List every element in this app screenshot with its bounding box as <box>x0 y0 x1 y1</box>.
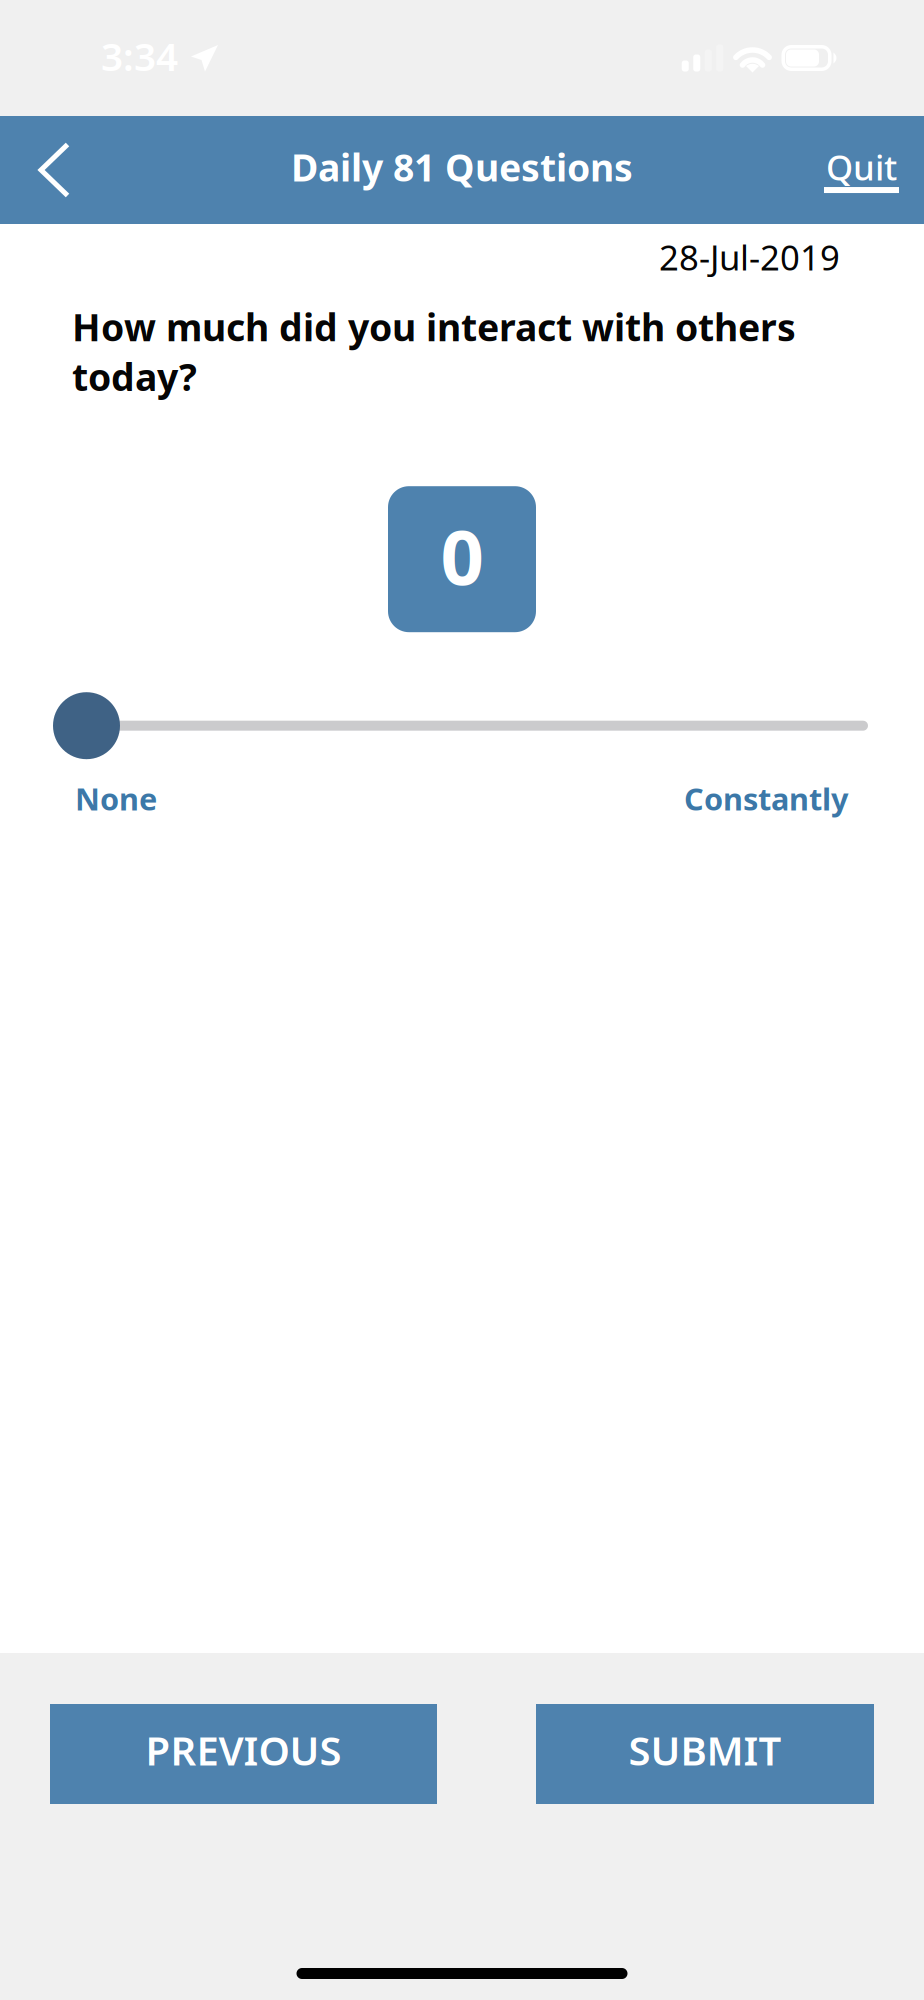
staticText: Quit <box>826 144 897 190</box>
staticText: Daily 81 Questions <box>291 142 633 192</box>
staticText: 28-Jul-2019 <box>659 234 840 280</box>
staticText: Constantly <box>684 778 849 819</box>
staticText: PREVIOUS <box>145 1723 341 1776</box>
staticText: SUBMIT <box>628 1723 781 1776</box>
button[interactable]: SUBMIT <box>536 1704 874 1804</box>
staticText: 3:34 <box>101 30 178 82</box>
staticText: None <box>75 778 157 819</box>
button[interactable]: Back <box>0 116 91 224</box>
staticText: How much did you interact with others to… <box>72 302 796 401</box>
button[interactable]: PREVIOUS <box>50 1704 437 1804</box>
button[interactable]: Quit <box>810 116 924 224</box>
staticText: 0 <box>440 505 483 606</box>
button[interactable]: Answer slider, 0 <box>0 692 924 759</box>
